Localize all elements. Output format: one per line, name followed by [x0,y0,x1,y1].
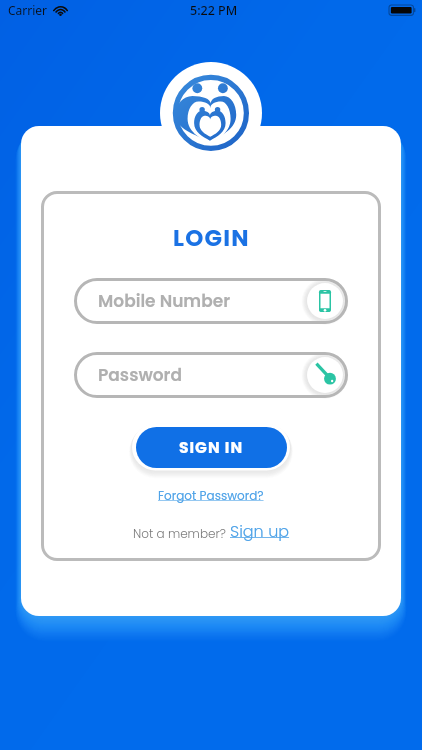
button[interactable]: Password [74,352,348,398]
staticText: LOGIN [173,222,250,254]
button[interactable]: Sign up [230,520,290,542]
staticText: 5:22 PM [190,2,238,19]
button[interactable]: SIGN IN [136,427,287,468]
button[interactable]: Forgot Password? [158,487,264,504]
button[interactable]: Password [302,352,348,398]
staticText: Carrier [8,2,48,18]
staticText: SIGN IN [179,437,244,459]
staticText: Mobile Number [98,289,231,313]
staticText: Password [98,363,182,387]
staticText: Not a member? [133,525,230,542]
button[interactable]: Mobile number [302,278,348,324]
button[interactable]: Mobile Number [74,278,348,324]
